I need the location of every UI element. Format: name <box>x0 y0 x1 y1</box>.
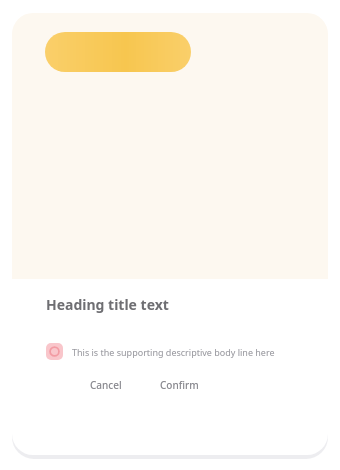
other: Info <box>46 343 63 360</box>
staticText: This is the supporting descriptive body … <box>72 346 275 358</box>
staticText: Confirm <box>160 378 199 392</box>
staticText: Cancel <box>90 378 122 392</box>
staticText: Heading title text <box>46 295 169 314</box>
button[interactable]: Primary action <box>45 32 191 72</box>
button[interactable]: Cancel <box>84 374 128 396</box>
button[interactable]: Info <box>46 343 300 360</box>
button[interactable]: Confirm <box>154 374 205 396</box>
